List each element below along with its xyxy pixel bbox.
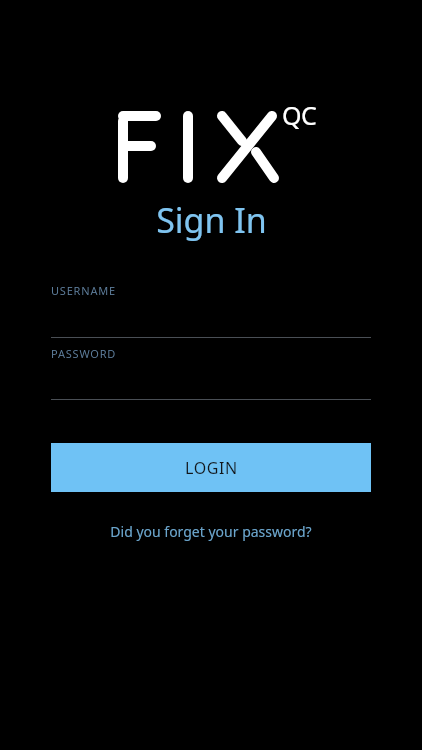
staticText: Sign In	[156, 197, 267, 243]
staticText: QC	[282, 98, 317, 132]
staticText: Did you forget your password?	[110, 522, 312, 541]
staticText: USERNAME	[51, 283, 116, 298]
button[interactable]: LOGIN	[51, 443, 371, 492]
button[interactable]: Did you forget your password?	[102, 518, 320, 545]
button[interactable]: PASSWORD	[51, 346, 371, 400]
staticText: PASSWORD	[51, 346, 117, 361]
staticText: LOGIN	[185, 457, 238, 479]
other: FIX QC logo	[110, 96, 315, 188]
button[interactable]: USERNAME	[51, 283, 371, 338]
